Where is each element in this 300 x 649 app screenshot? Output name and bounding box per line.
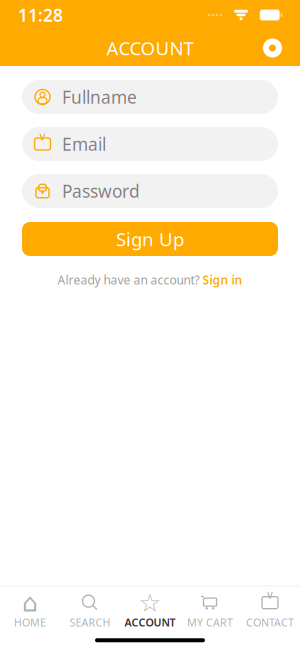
button[interactable]: ∨ <box>240 587 300 629</box>
staticText: Sign Up <box>116 227 184 251</box>
button[interactable]: Password <box>22 174 278 208</box>
button[interactable]: ☆ <box>120 587 180 629</box>
staticText: ACCOUNT <box>124 615 175 629</box>
button[interactable]: Sign Up <box>22 222 278 256</box>
staticText: Fullname <box>62 85 137 108</box>
button[interactable]: SEARCH <box>60 587 120 629</box>
staticText: ACCOUNT <box>106 36 193 60</box>
staticText: SEARCH <box>69 615 110 629</box>
staticText: Email <box>62 132 106 155</box>
staticText: ∨ <box>265 588 274 601</box>
staticText: Sign in <box>202 272 242 288</box>
staticText: HOME <box>14 615 46 629</box>
staticText: ⌂ <box>22 588 38 617</box>
staticText: ∨ <box>38 129 47 143</box>
staticText: ☆ <box>138 588 161 617</box>
staticText: MY CART <box>187 615 233 629</box>
button[interactable]: Fullname <box>22 80 278 114</box>
button[interactable]: MY CART <box>180 587 240 629</box>
staticText: Already have an account? <box>57 272 199 288</box>
button[interactable]: Settings <box>257 32 288 63</box>
button[interactable]: ⌂ <box>0 587 60 629</box>
button[interactable]: Already have an account? <box>22 269 278 291</box>
staticText: Password <box>62 179 140 202</box>
staticText: 11:28 <box>18 3 63 26</box>
staticText: CONTACT <box>246 615 294 629</box>
button[interactable]: ∨ <box>22 127 278 161</box>
